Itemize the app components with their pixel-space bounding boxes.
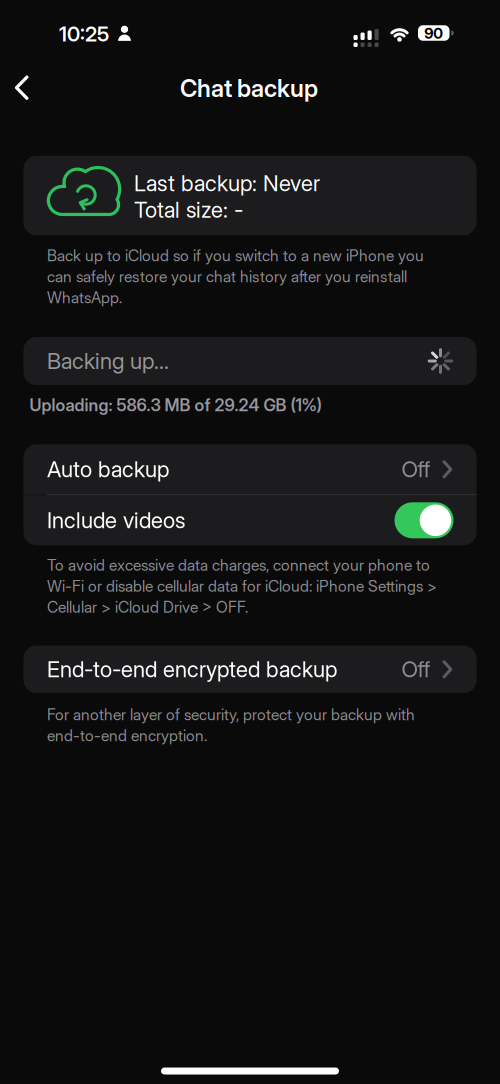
button[interactable]: Auto backup: [23, 444, 476, 494]
staticText: Off: [401, 456, 430, 483]
staticText: Off: [401, 656, 430, 683]
staticText: Auto backup: [47, 456, 169, 483]
staticText: To avoid excessive data charges, connect…: [47, 556, 430, 574]
button[interactable]: Back: [8, 74, 44, 102]
staticText: Back up to iCloud so if you switch to a …: [47, 246, 424, 265]
staticText: For another layer of security, protect y…: [47, 705, 415, 724]
button[interactable]: Backing up...: [23, 337, 476, 385]
button[interactable]: Include videos: [394, 502, 453, 538]
staticText: Last backup: Never: [134, 170, 320, 197]
staticText: Backing up...: [47, 348, 169, 374]
staticText: WhatsApp.: [47, 288, 122, 307]
staticText: can safely restore your chat history aft…: [47, 267, 407, 286]
staticText: end-to-end encryption.: [47, 726, 207, 745]
staticText: Wi-Fi or disable cellular data for iClou…: [47, 577, 437, 595]
staticText: Total size: -: [134, 196, 243, 223]
staticText: Chat backup: [180, 74, 318, 103]
staticText: End-to-end encrypted backup: [47, 656, 337, 683]
staticText: Cellular > iCloud Drive > OFF.: [47, 598, 248, 616]
staticText: Uploading: 586.3 MB of 29.24 GB (1%): [29, 395, 321, 415]
staticText: 10:25: [59, 21, 109, 46]
button[interactable]: End-to-end encrypted backup: [23, 645, 476, 693]
staticText: 90: [424, 24, 443, 42]
staticText: Include videos: [47, 507, 185, 534]
